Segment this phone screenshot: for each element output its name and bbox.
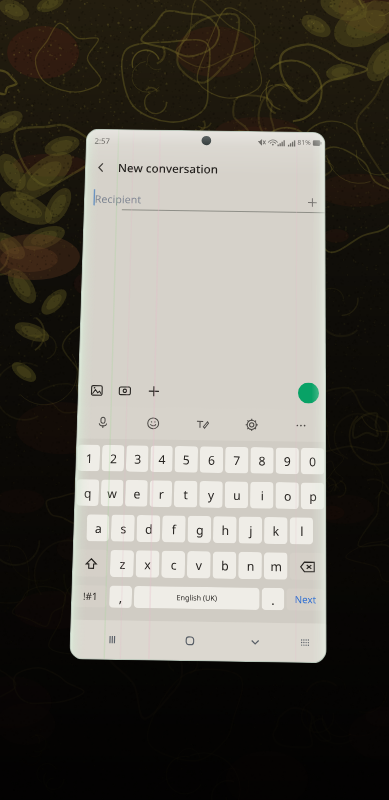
button[interactable]: 0 (301, 448, 324, 475)
staticText: 3 (134, 450, 141, 467)
staticText: l (300, 523, 304, 539)
staticText: p (309, 488, 317, 504)
button[interactable]: 9 (276, 447, 299, 474)
button[interactable]: y (199, 481, 223, 508)
button[interactable]: , (109, 585, 132, 608)
button[interactable]: Add attachment (144, 381, 164, 401)
staticText: Recipient (94, 191, 142, 206)
staticText: x (144, 556, 151, 572)
staticText: 5 (183, 451, 190, 467)
button[interactable]: 4 (150, 446, 173, 472)
button[interactable]: u (225, 481, 248, 508)
button[interactable]: z (110, 550, 134, 577)
button[interactable]: k (264, 517, 288, 544)
button[interactable]: t (174, 480, 198, 508)
button[interactable]: 1 (77, 444, 100, 471)
button[interactable]: Next (286, 588, 324, 611)
button[interactable]: Add recipient (302, 192, 322, 212)
staticText: g (196, 521, 204, 538)
button[interactable]: Back (86, 153, 115, 181)
button[interactable]: j (238, 516, 262, 544)
button[interactable]: f (162, 515, 186, 543)
staticText: i (260, 487, 264, 503)
staticText: b (221, 557, 229, 574)
staticText: e (133, 485, 141, 501)
button[interactable]: 8 (250, 447, 274, 474)
button[interactable]: English (UK) (134, 586, 260, 610)
staticText: s (120, 520, 127, 537)
button[interactable]: x (135, 550, 160, 578)
button[interactable]: Camera (115, 381, 135, 401)
button[interactable]: a (86, 514, 109, 541)
button[interactable]: m (264, 552, 287, 580)
button[interactable]: l (290, 517, 313, 544)
button[interactable]: s (111, 515, 135, 542)
button[interactable]: . (262, 588, 284, 610)
button[interactable]: o (275, 482, 299, 509)
staticText: 1 (85, 450, 93, 466)
staticText: 2 (110, 450, 117, 466)
button[interactable]: 7 (225, 447, 248, 473)
button[interactable]: g (187, 516, 211, 543)
staticText: z (119, 555, 126, 572)
staticText: f (171, 521, 177, 537)
button[interactable]: i (250, 482, 273, 509)
button[interactable]: q (76, 479, 99, 506)
staticText: 8 (258, 452, 266, 469)
staticText: j (249, 522, 253, 538)
button[interactable] (289, 552, 324, 580)
staticText: 7 (233, 452, 240, 468)
staticText: 6 (208, 451, 215, 468)
button[interactable]: More options (276, 409, 325, 442)
button[interactable]: Emoji (128, 407, 178, 440)
button[interactable]: d (136, 515, 160, 542)
staticText: k (272, 522, 279, 539)
button[interactable]: v (187, 551, 211, 579)
staticText: 0 (309, 453, 316, 469)
button[interactable]: 3 (126, 445, 149, 472)
staticText: 4 (158, 451, 166, 467)
button[interactable]: Switch keyboard (284, 623, 326, 662)
button[interactable]: Voice input (77, 406, 128, 439)
button[interactable]: Recent apps (70, 620, 153, 659)
staticText: m (270, 557, 282, 574)
button[interactable]: !#1 (73, 585, 107, 608)
staticText: English (UK) (176, 593, 217, 604)
button[interactable]: 6 (200, 446, 223, 473)
button[interactable] (74, 549, 108, 577)
staticText: c (170, 556, 177, 573)
staticText: 81% (297, 138, 311, 148)
staticText: v (195, 556, 202, 573)
staticText: r (159, 485, 164, 502)
button[interactable]: b (212, 551, 236, 579)
staticText: , (118, 589, 123, 606)
button[interactable]: Send message (298, 382, 319, 404)
staticText: 9 (284, 453, 291, 469)
staticText: d (145, 520, 153, 537)
button[interactable]: e (125, 480, 148, 507)
staticText: 2:57 (94, 135, 110, 146)
button[interactable]: r (149, 480, 172, 507)
button[interactable]: c (161, 551, 185, 578)
staticText: Next (295, 592, 316, 607)
staticText: New conversation (118, 160, 219, 176)
staticText: y (207, 486, 215, 503)
staticText: . (271, 591, 275, 608)
button[interactable]: Gallery (86, 380, 107, 401)
button[interactable]: 5 (174, 446, 198, 473)
staticText: u (233, 486, 241, 503)
button[interactable]: n (238, 552, 262, 579)
button[interactable]: h (213, 516, 237, 543)
button[interactable]: w (101, 479, 124, 506)
staticText: a (95, 519, 102, 536)
button[interactable]: Home (152, 621, 226, 661)
button[interactable]: 2 (102, 445, 124, 472)
staticText: h (221, 521, 229, 538)
staticText: !#1 (82, 589, 98, 603)
staticText: n (246, 557, 255, 574)
button[interactable]: Keyboard settings (226, 408, 276, 441)
button[interactable]: p (301, 482, 324, 509)
button[interactable]: Hide keyboard (226, 622, 284, 662)
button[interactable]: Handwriting (177, 408, 227, 441)
staticText: t (183, 486, 188, 502)
